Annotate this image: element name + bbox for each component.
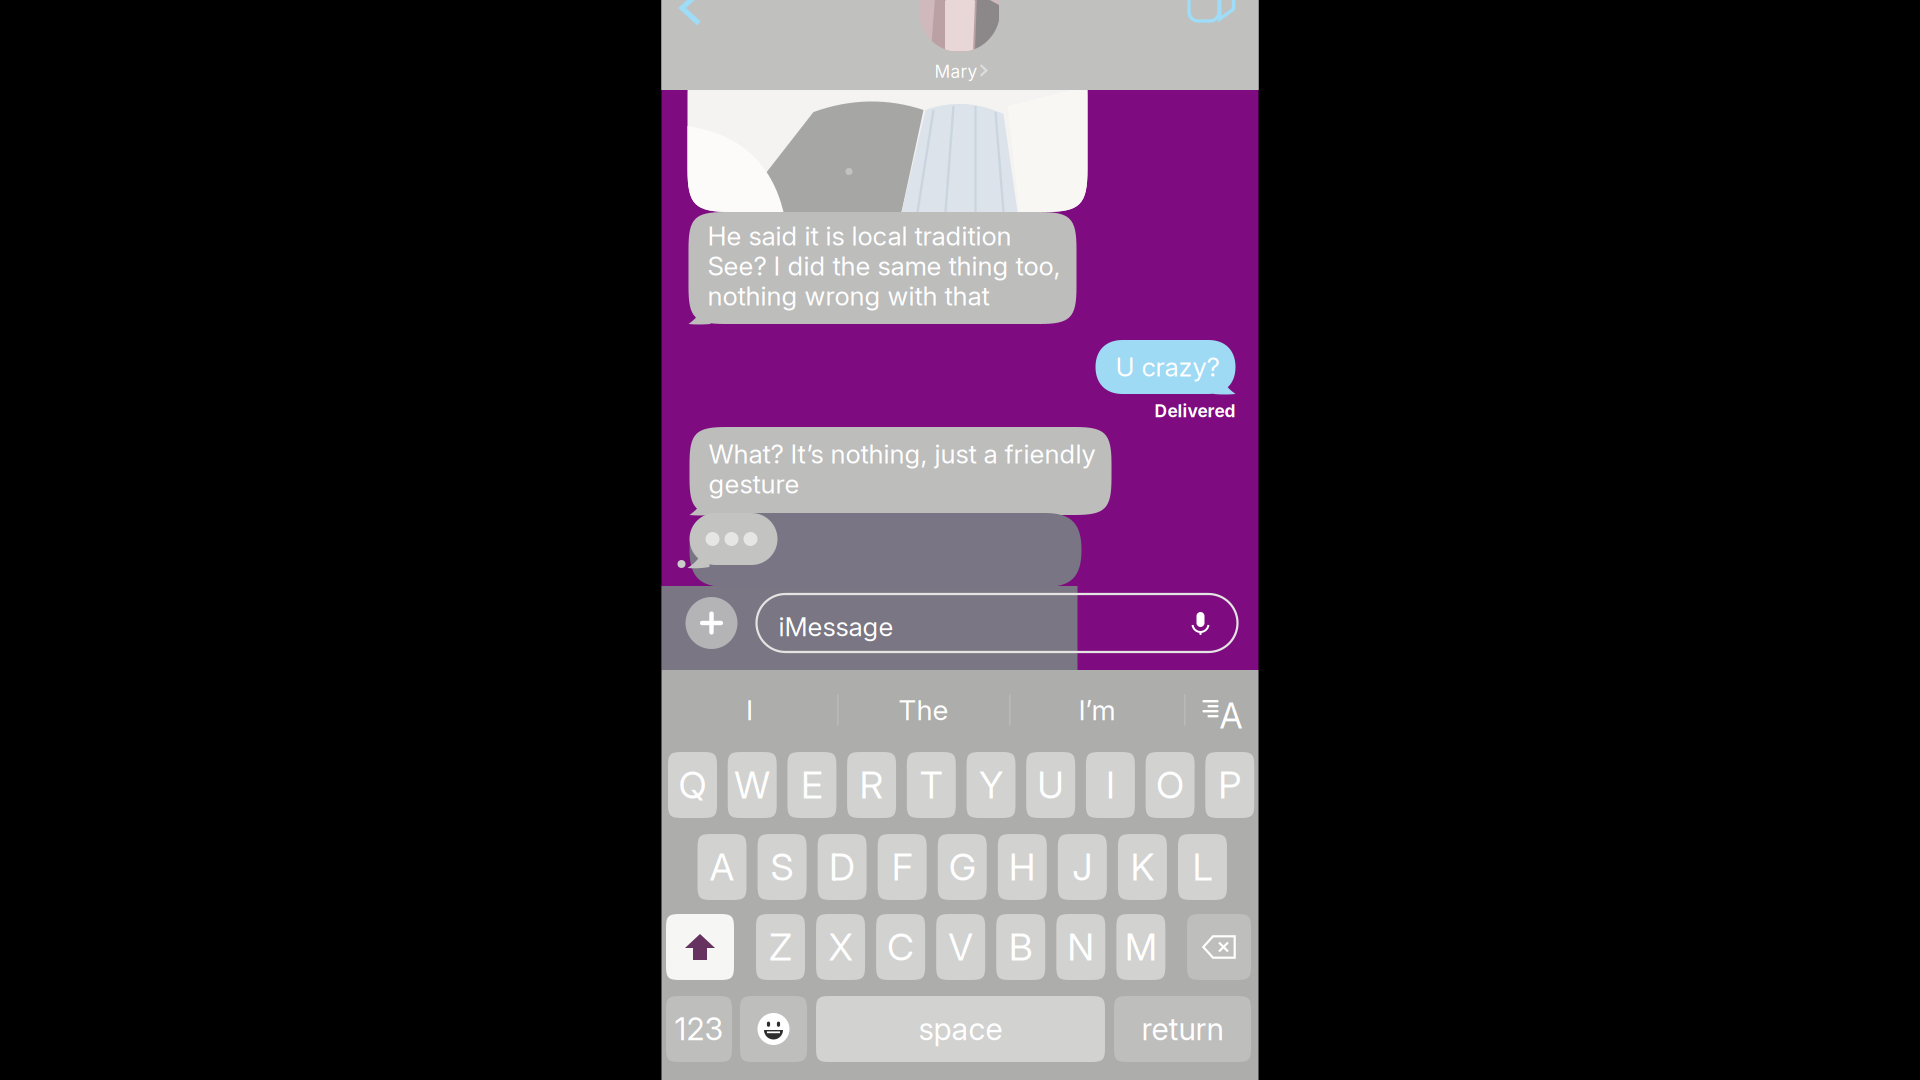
staticText: Mary [934,61,977,82]
button[interactable]: G [938,834,987,900]
button[interactable]: What? It’s nothing, just a friendly [689,427,1111,515]
staticText: G [949,844,976,890]
staticText: B [1009,924,1033,970]
staticText: H [1009,844,1036,890]
staticText: The [898,693,948,727]
button[interactable]: X [816,914,865,980]
staticText: O [1156,762,1184,808]
button[interactable]: A [697,834,746,900]
staticText: S [771,844,794,890]
button[interactable]: Q [668,752,717,818]
staticText: C [887,924,914,970]
button[interactable]: The [838,681,1008,739]
button[interactable]: M [1116,914,1165,980]
staticText: D [829,844,855,890]
staticText: 123 [674,1010,723,1047]
button[interactable]: N [1056,914,1105,980]
staticText: iMessage [778,611,893,642]
button[interactable]: W [728,752,777,818]
staticText: X [829,924,853,970]
button[interactable]: Delete [1187,914,1251,980]
staticText: L [1192,844,1212,890]
button[interactable]: O [1146,752,1195,818]
staticText: Z [769,924,792,970]
button[interactable]: H [998,834,1047,900]
staticText: P [1218,762,1241,808]
staticText: See? I did the same thing too, [707,250,1060,282]
button[interactable]: I’m [1010,681,1183,739]
staticText: nothing wrong with that [707,280,989,312]
button[interactable]: iMessage [756,594,1237,652]
staticText: return [1141,1010,1223,1047]
staticText: W [734,762,770,808]
button[interactable]: Shift [666,914,734,980]
button[interactable]: return [1114,996,1251,1062]
button[interactable]: Mary [870,0,1050,90]
staticText: M [1125,924,1157,970]
staticText: He said it is local tradition [707,220,1011,252]
staticText: U crazy? [1115,351,1219,383]
staticText: space [918,1010,1002,1047]
button[interactable]: F [878,834,927,900]
staticText: E [801,762,823,808]
staticText: A [1219,695,1242,737]
staticText: What? It’s nothing, just a friendly [708,438,1095,470]
button[interactable]: 123 [666,996,732,1062]
staticText: Q [678,762,706,808]
staticText: F [892,844,913,890]
button[interactable]: Back [659,0,721,34]
staticText: K [1130,844,1154,890]
button[interactable]: C [876,914,925,980]
staticText: V [948,924,973,970]
button[interactable]: He said it is local tradition [688,212,1076,324]
staticText: I [746,693,753,727]
staticText: U [1037,762,1064,808]
button[interactable]: R [847,752,896,818]
button[interactable]: FaceTime [1176,0,1246,30]
button[interactable]: U crazy? [1095,340,1235,394]
button[interactable]: Emoji [740,996,807,1062]
button[interactable]: Z [756,914,805,980]
button[interactable]: Photo attachment [687,52,1087,212]
button[interactable]: J [1058,834,1107,900]
button[interactable]: U [1026,752,1075,818]
button[interactable]: V [936,914,985,980]
button[interactable]: I [662,681,836,739]
staticText: N [1067,924,1094,970]
staticText: A [709,844,734,890]
staticText: R [860,762,884,808]
button[interactable]: Add attachment [685,597,737,649]
button[interactable]: Y [966,752,1015,818]
button[interactable]: P [1205,752,1254,818]
button[interactable]: B [996,914,1045,980]
button[interactable]: space [816,996,1105,1062]
button[interactable]: Text formatting [1186,681,1256,739]
staticText: Y [979,762,1003,808]
staticText: Delivered [1154,400,1235,421]
staticText: T [920,762,943,808]
button[interactable]: I [1086,752,1135,818]
button[interactable]: D [818,834,867,900]
button[interactable]: L [1178,834,1227,900]
button[interactable]: T [907,752,956,818]
staticText: gesture [708,468,799,500]
staticText: I [1106,762,1115,808]
button[interactable]: K [1118,834,1167,900]
staticText: I’m [1078,693,1115,727]
button[interactable]: E [787,752,836,818]
staticText: J [1072,844,1092,890]
button[interactable]: S [758,834,807,900]
